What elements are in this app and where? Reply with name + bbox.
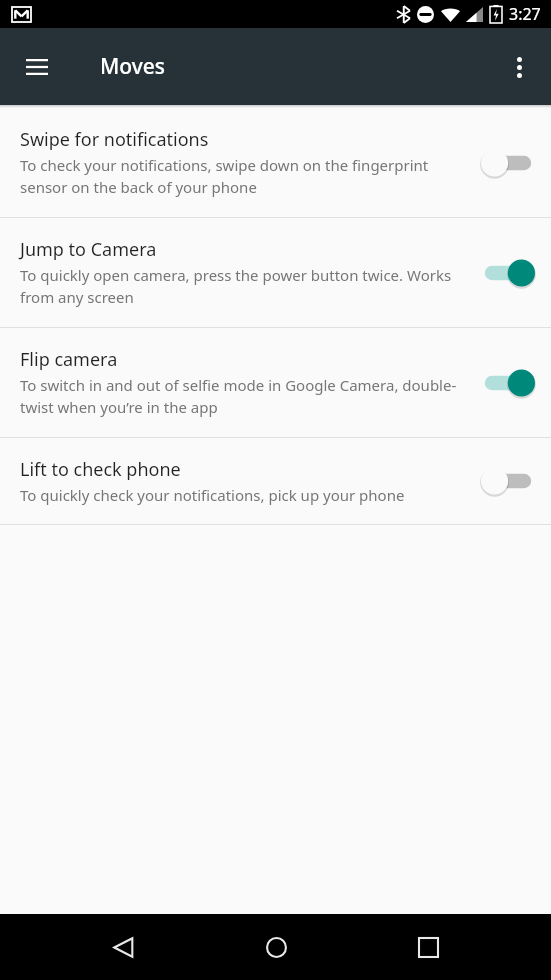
staticText: Moves (100, 52, 166, 81)
staticText: Flip camera (20, 347, 118, 372)
button[interactable]: On (481, 366, 535, 400)
staticText: To check your notifications, swipe down … (20, 155, 467, 198)
button[interactable]: Navigation menu (13, 43, 61, 91)
button[interactable]: Recent apps (398, 917, 458, 977)
button[interactable]: Swipe for notifications (0, 108, 551, 217)
staticText: To switch in and out of selfie mode in G… (20, 375, 467, 418)
button[interactable]: Lift to check phone (0, 438, 551, 524)
button[interactable]: Off (481, 464, 535, 498)
staticText: 3:27 (509, 3, 541, 25)
staticText: Lift to check phone (20, 457, 181, 482)
button[interactable]: Back (93, 917, 153, 977)
button[interactable]: Home (246, 917, 306, 977)
button[interactable]: Flip camera (0, 328, 551, 437)
button[interactable]: More options (496, 44, 542, 90)
button[interactable]: On (481, 256, 535, 290)
staticText: Swipe for notifications (20, 127, 209, 152)
staticText: Jump to Camera (20, 237, 157, 262)
staticText: To quickly check your notifications, pic… (20, 485, 405, 505)
button[interactable]: Off (481, 146, 535, 180)
staticText: To quickly open camera, press the power … (20, 265, 467, 308)
button[interactable]: Jump to Camera (0, 218, 551, 327)
